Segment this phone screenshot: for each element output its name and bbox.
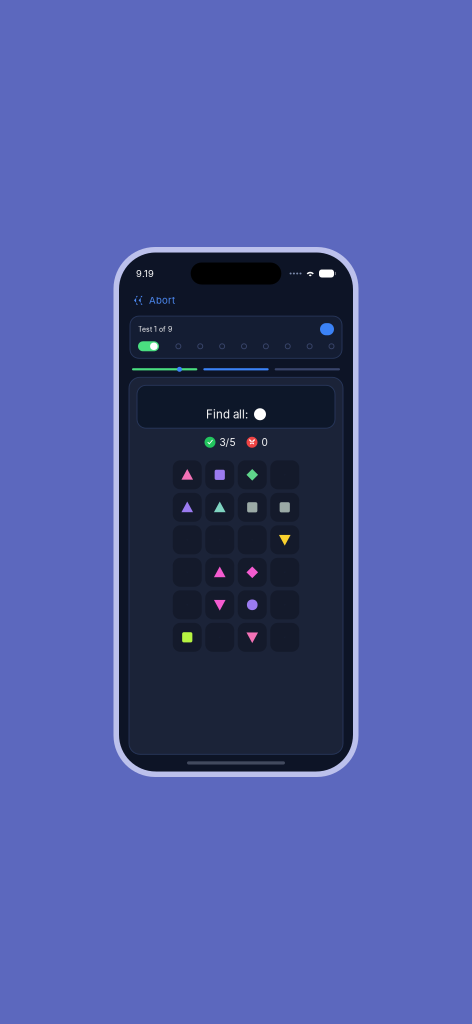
staticText: 0 [261, 436, 267, 448]
button[interactable]: Abort [131, 292, 177, 308]
staticText: Abort [149, 294, 175, 306]
staticText: Find all: [206, 407, 248, 421]
staticText: 9.19 [136, 268, 154, 279]
staticText: Test 1 of 9 [138, 325, 172, 333]
staticText: 3/5 [219, 436, 235, 448]
